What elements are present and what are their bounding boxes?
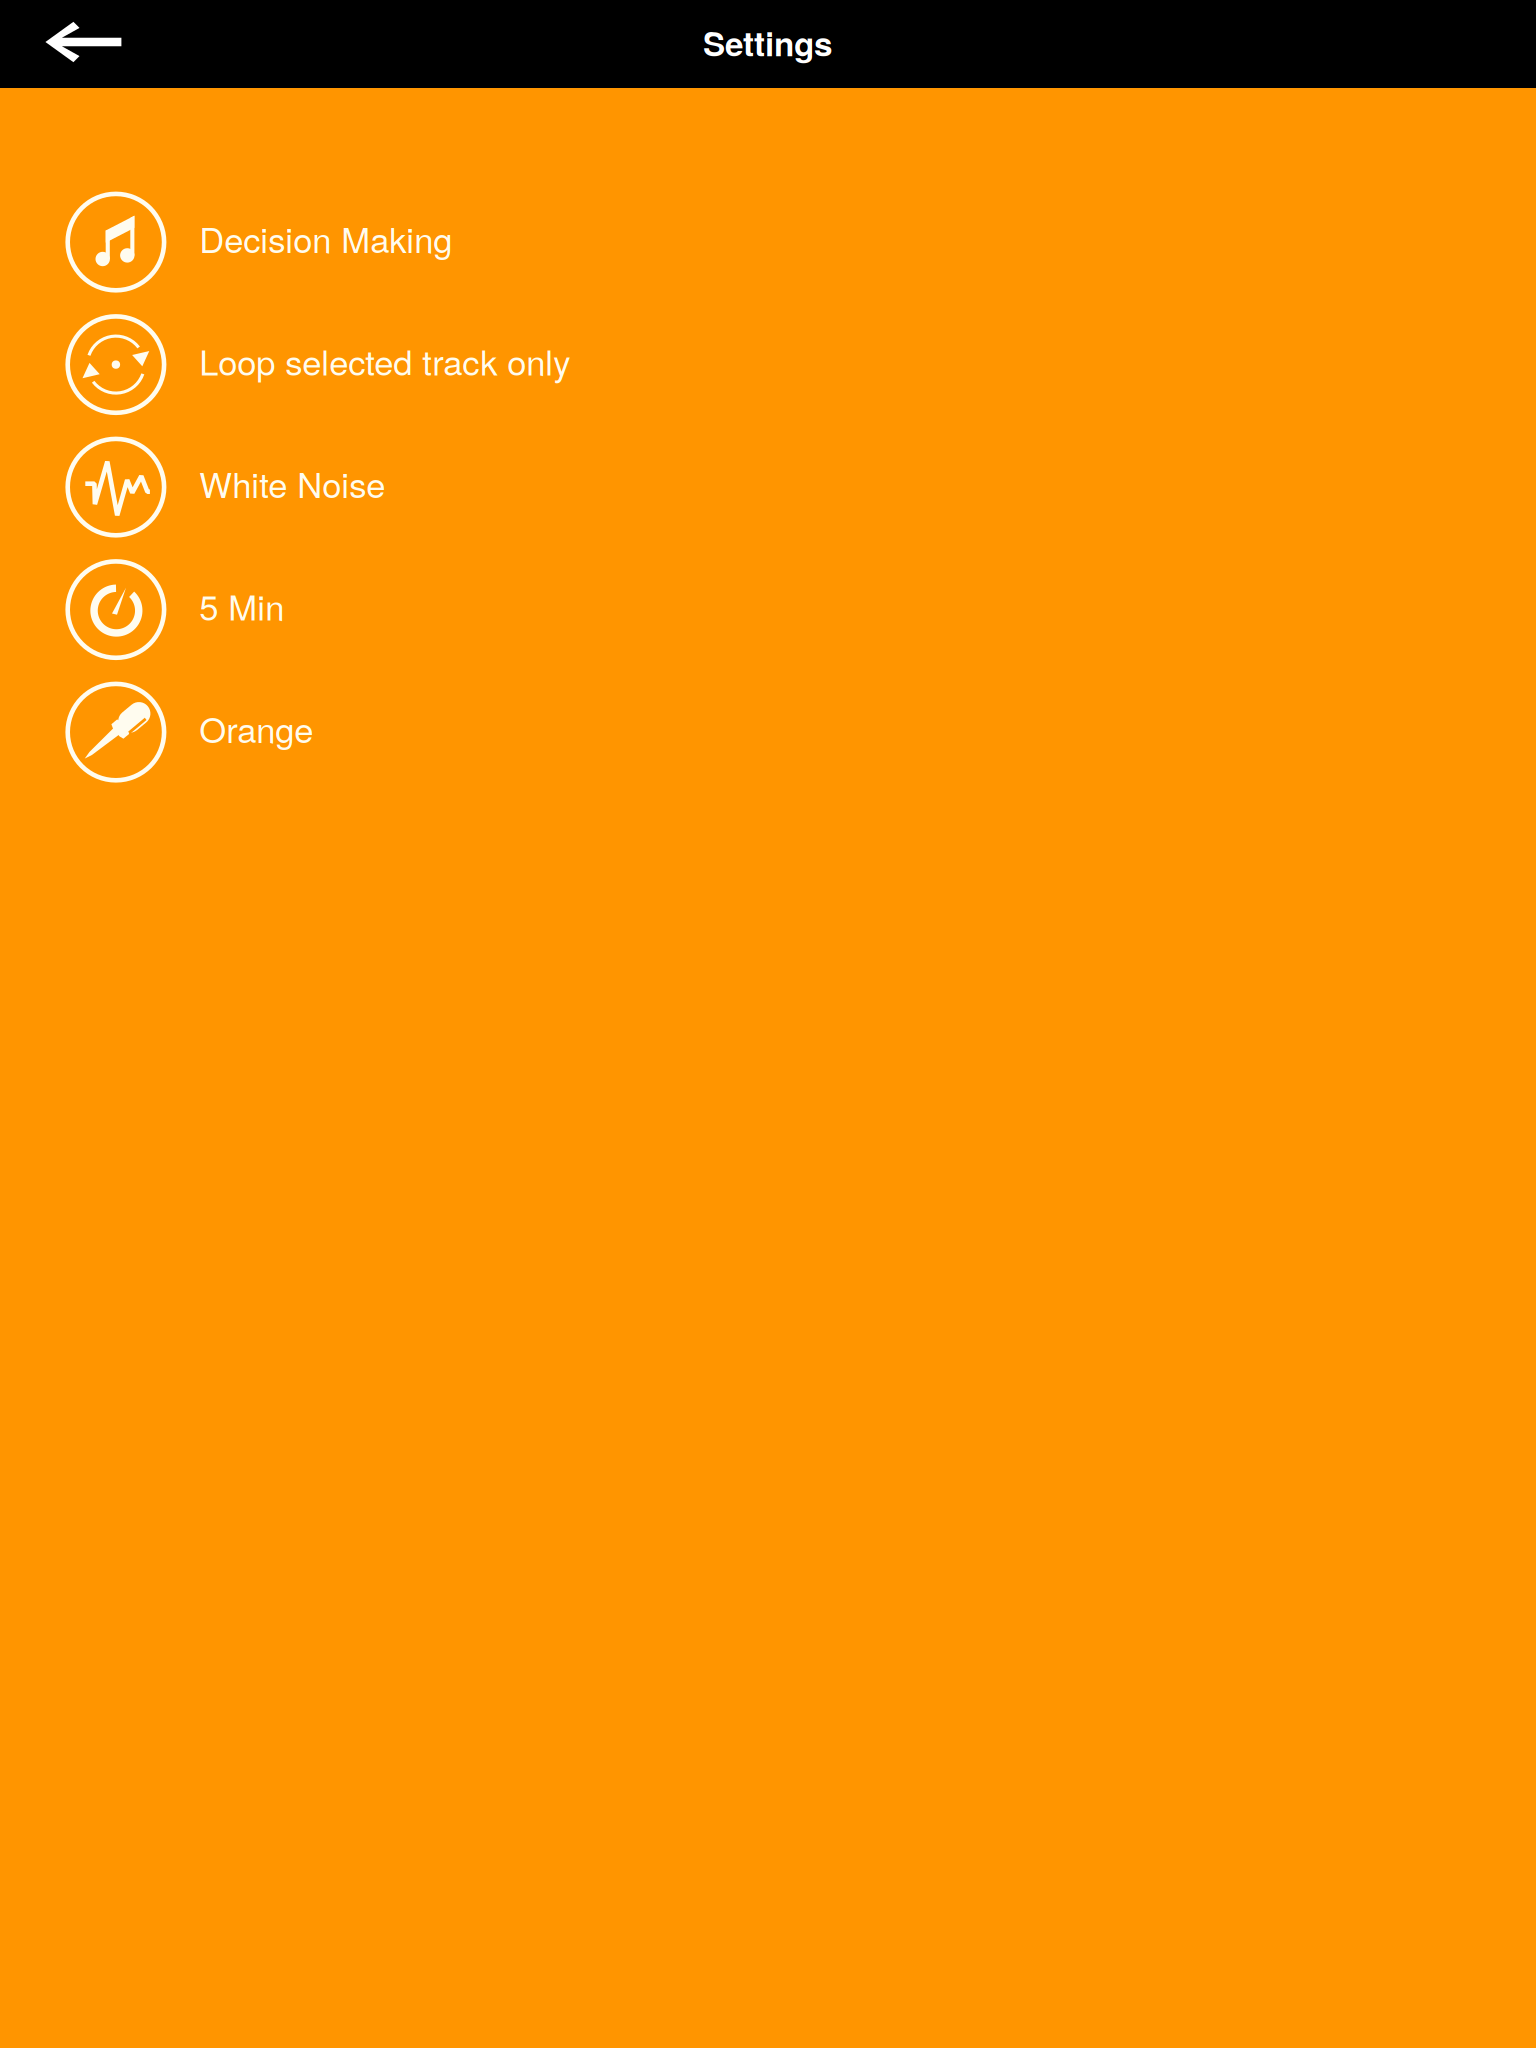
staticText: Decision Making (199, 213, 452, 263)
staticText: White Noise (199, 458, 385, 508)
button[interactable]: White Noise (0, 426, 1536, 548)
button[interactable]: Back (0, 0, 141, 88)
button[interactable]: Orange (0, 671, 1536, 793)
staticText: Orange (199, 703, 313, 753)
button[interactable]: Loop selected track only (0, 303, 1536, 426)
button[interactable]: Decision Making (0, 181, 1536, 303)
staticText: 5 Min (199, 581, 284, 630)
staticText: Loop selected track only (199, 336, 570, 385)
staticText: Settings (703, 19, 833, 66)
button[interactable]: 5 Min (0, 548, 1536, 671)
